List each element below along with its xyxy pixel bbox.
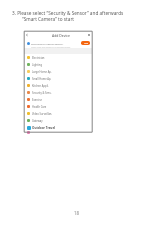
staticText: Lighting: [32, 63, 43, 67]
button[interactable]: Gateway: [27, 117, 92, 124]
staticText: 3. Please select “Security & Sensor” and…: [12, 10, 124, 16]
button[interactable]: Lighting: [27, 61, 92, 68]
button[interactable]: Health Care: [27, 103, 92, 110]
button[interactable]: Close: [87, 33, 91, 37]
button[interactable]: Exercise: [27, 96, 92, 103]
staticText: “Smart Camera” to start: [22, 16, 75, 22]
staticText: Small Home Ap.: [32, 77, 52, 81]
staticText: Add: [84, 42, 88, 45]
staticText: Exercise: [32, 98, 42, 102]
staticText: Electrician: [32, 56, 45, 60]
staticText: Health Care: [32, 105, 47, 109]
button[interactable]: Video Surveillan.: [27, 110, 92, 117]
button[interactable]: Small Home Ap.: [27, 75, 92, 82]
button[interactable]: Add: [81, 41, 90, 45]
button[interactable]: Kitchen Appli.: [27, 82, 92, 89]
staticText: Outdoor Travel: [32, 126, 56, 130]
staticText: Add Device: [52, 33, 70, 38]
staticText: Large Home Ap.: [32, 70, 52, 74]
staticText: Video Surveillan.: [32, 112, 53, 116]
staticText: 18: [74, 210, 80, 216]
button[interactable]: Large Home Ap.: [27, 68, 92, 75]
staticText: Make sure the device is in pairing mode.: [31, 46, 71, 49]
staticText: Kitchen Appli.: [32, 84, 49, 88]
button[interactable]: Security & Sens.: [27, 89, 92, 96]
staticText: Searching for nearby devices.: [31, 42, 64, 45]
button[interactable]: Electrician: [27, 54, 92, 61]
button[interactable]: Back: [25, 33, 29, 37]
button[interactable]: Outdoor Travel: [27, 124, 92, 131]
staticText: Gateway: [32, 119, 43, 123]
button[interactable]: [27, 131, 92, 136]
staticText: Security & Sens.: [32, 91, 52, 95]
